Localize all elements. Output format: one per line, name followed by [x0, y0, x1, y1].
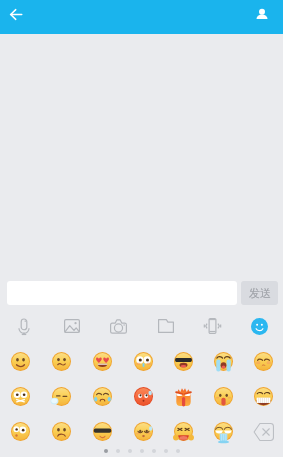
- button[interactable]: Emoji 15: [0, 414, 41, 449]
- button[interactable]: Emoji 18: [123, 414, 163, 449]
- button[interactable]: Emoji: [236, 310, 283, 342]
- button[interactable]: Voice message: [0, 310, 48, 342]
- button[interactable]: Emoji 16: [41, 414, 82, 449]
- button[interactable]: Emoji 11: [123, 379, 163, 414]
- button[interactable]: Emoji 2: [41, 344, 82, 379]
- button[interactable]: Back: [4, 2, 28, 26]
- button[interactable]: Emoji 20: [203, 414, 243, 449]
- button[interactable]: Emoji 13: [203, 379, 243, 414]
- button[interactable]: Emoji 9: [41, 379, 82, 414]
- button[interactable]: Emoji 19: [163, 414, 203, 449]
- button[interactable]: Emoji 1: [0, 344, 41, 379]
- staticText: 发送: [249, 286, 271, 300]
- button[interactable]: 发送: [241, 281, 278, 305]
- button[interactable]: Emoji 8: [0, 379, 41, 414]
- button[interactable]: Profile: [250, 2, 274, 26]
- button[interactable]: Emoji 10: [82, 379, 123, 414]
- button[interactable]: Emoji 14: [243, 379, 283, 414]
- button[interactable]: Emoji 7: [243, 344, 283, 379]
- button[interactable]: Camera: [95, 310, 142, 342]
- button[interactable]: Emoji 4: [123, 344, 163, 379]
- button[interactable]: Emoji 3: [82, 344, 123, 379]
- button[interactable]: Emoji 6: [203, 344, 243, 379]
- button[interactable]: Files: [142, 310, 189, 342]
- button[interactable]: Gallery: [48, 310, 95, 342]
- button[interactable]: Emoji 17: [82, 414, 123, 449]
- button[interactable]: Emoji 5: [163, 344, 203, 379]
- button[interactable]: [251, 318, 268, 335]
- button[interactable]: Emoji 12: [163, 379, 203, 414]
- button[interactable]: Delete: [243, 414, 283, 449]
- button[interactable]: Shake: [189, 310, 236, 342]
